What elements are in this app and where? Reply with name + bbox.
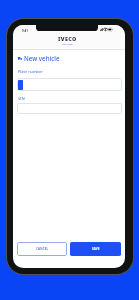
button[interactable]: CANCEL — [17, 242, 67, 256]
button[interactable]: New vehicle — [13, 51, 125, 65]
staticText: VIN — [18, 96, 25, 101]
staticText: Non Stop — [62, 42, 73, 45]
staticText: New vehicle — [24, 54, 60, 62]
staticText: CANCEL — [36, 247, 49, 251]
staticText: 9:41 — [22, 29, 28, 33]
staticText: Plate number — [18, 69, 43, 74]
staticText: SAVE — [92, 247, 100, 251]
staticText: IVECO — [58, 35, 77, 42]
button[interactable]: SAVE — [70, 242, 121, 256]
